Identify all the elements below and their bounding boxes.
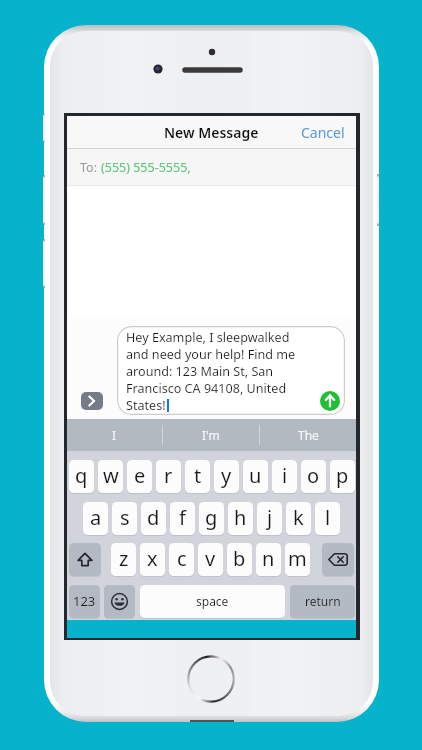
staticText: z (119, 545, 129, 572)
button[interactable]: Show app drawer (81, 392, 103, 410)
staticText: u (249, 462, 262, 489)
staticText: d (147, 504, 160, 531)
button[interactable]: e (127, 460, 152, 493)
staticText: 123 (73, 592, 96, 610)
staticText: a (90, 504, 102, 531)
button[interactable]: d (141, 502, 166, 535)
button[interactable]: g (199, 502, 224, 535)
staticText: I'm (202, 427, 220, 443)
button[interactable]: x (140, 543, 165, 576)
button[interactable]: f (170, 502, 195, 535)
button[interactable]: Cancel (290, 117, 356, 148)
button[interactable]: v (198, 543, 223, 576)
button[interactable]: w (98, 460, 123, 493)
button[interactable]: m (285, 543, 310, 576)
button[interactable]: 123 (69, 585, 100, 618)
button[interactable]: b (227, 543, 252, 576)
staticText: n (262, 545, 275, 572)
staticText: o (307, 462, 320, 489)
button[interactable]: z (111, 543, 136, 576)
staticText: f (179, 504, 186, 531)
staticText: around: 123 Main St, San (126, 363, 274, 380)
staticText: v (205, 545, 216, 572)
button[interactable]: i (272, 460, 297, 493)
staticText: r (164, 462, 173, 489)
staticText: h (234, 504, 247, 531)
button[interactable]: o (301, 460, 326, 493)
staticText: w (103, 462, 119, 489)
staticText: t (194, 462, 202, 489)
staticText: p (336, 462, 349, 489)
button[interactable]: Backspace (322, 543, 354, 576)
staticText: c (177, 545, 187, 572)
button[interactable]: t (185, 460, 210, 493)
button[interactable]: s (112, 502, 137, 535)
staticText: New Message (164, 123, 259, 142)
button[interactable]: space (140, 585, 285, 618)
button[interactable]: j (257, 502, 282, 535)
staticText: I (112, 427, 117, 443)
staticText: y (221, 462, 232, 489)
button[interactable]: c (169, 543, 194, 576)
staticText: States! (126, 397, 166, 414)
button[interactable]: Shift (69, 543, 101, 576)
staticText: g (205, 504, 218, 531)
button[interactable]: r (156, 460, 181, 493)
button[interactable]: k (286, 502, 311, 535)
staticText: (555) 555-5555, (101, 159, 191, 176)
button[interactable]: y (214, 460, 239, 493)
staticText: l (325, 504, 331, 531)
button[interactable]: u (243, 460, 268, 493)
button[interactable]: a (83, 502, 108, 535)
staticText: and need your help! Find me (126, 346, 296, 363)
button[interactable]: Emoji (104, 585, 135, 618)
staticText: k (293, 504, 304, 531)
button[interactable]: h (228, 502, 253, 535)
button[interactable]: p (330, 460, 355, 493)
button[interactable]: n (256, 543, 281, 576)
button[interactable]: Hey Example, I sleepwalked (117, 326, 345, 415)
button[interactable]: l (315, 502, 340, 535)
button[interactable]: The (260, 419, 356, 451)
staticText: s (120, 504, 130, 531)
button[interactable]: return (290, 585, 355, 618)
staticText: j (267, 504, 273, 531)
staticText: m (288, 545, 307, 572)
staticText: space (196, 593, 229, 609)
staticText: Hey Example, I sleepwalked (126, 329, 290, 346)
staticText: x (147, 545, 158, 572)
staticText: i (282, 462, 288, 489)
staticText: e (134, 462, 146, 489)
staticText: return (305, 593, 341, 609)
button[interactable]: Send (320, 391, 340, 411)
staticText: To: (80, 159, 101, 176)
button[interactable]: I (67, 419, 162, 451)
staticText: q (75, 462, 88, 489)
staticText: The (298, 427, 319, 443)
staticText: Francisco CA 94108, United (126, 380, 287, 397)
button[interactable]: q (69, 460, 94, 493)
button[interactable]: I'm (163, 419, 259, 451)
staticText: b (233, 545, 246, 572)
staticText: Cancel (301, 123, 345, 142)
